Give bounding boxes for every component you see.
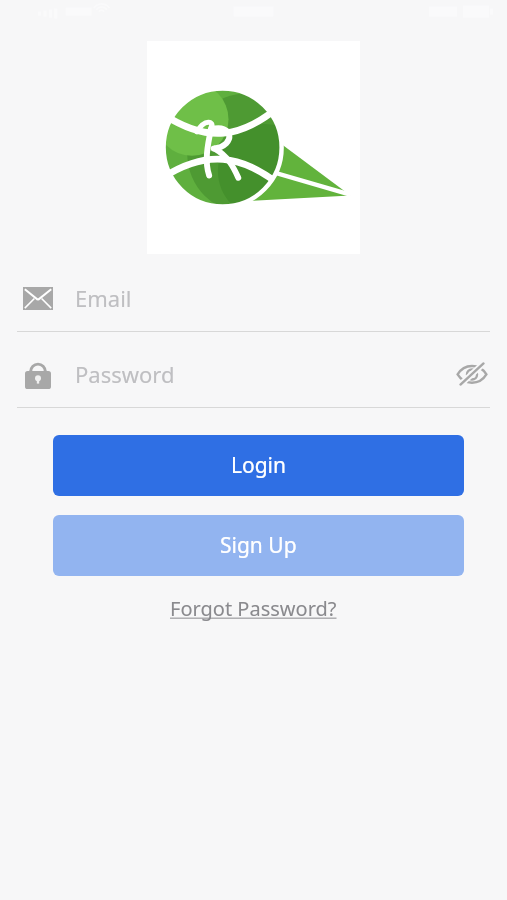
staticText: Login	[231, 451, 287, 480]
button[interactable]: Forgot Password?	[164, 593, 343, 624]
staticText: Forgot Password?	[170, 595, 337, 622]
button[interactable]: Email	[0, 276, 507, 332]
other: Password	[22, 358, 54, 390]
button[interactable]: Show password	[455, 357, 489, 391]
button[interactable]: Login	[53, 435, 464, 496]
staticText: Password	[75, 359, 175, 389]
staticText: Email	[75, 283, 132, 313]
button[interactable]: Password	[0, 352, 507, 408]
button[interactable]: Sign Up	[53, 515, 464, 576]
staticText: Sign Up	[220, 531, 297, 560]
other: Email	[22, 282, 54, 314]
